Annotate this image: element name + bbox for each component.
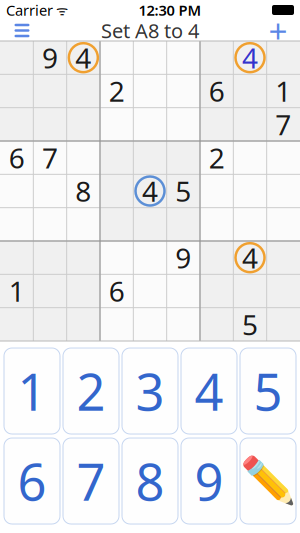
staticText: 6: [209, 72, 225, 110]
staticText: 5: [242, 306, 258, 343]
staticText: 1: [17, 357, 46, 425]
staticText: 4: [242, 239, 258, 276]
staticText: 7: [76, 447, 105, 515]
staticText: 6: [109, 272, 125, 310]
staticText: 9: [42, 39, 58, 76]
staticText: 4: [75, 39, 91, 76]
staticText: Set A8 to 4: [101, 17, 199, 44]
staticText: 9: [175, 239, 191, 276]
staticText: 6: [9, 139, 25, 176]
staticText: 9: [194, 447, 223, 515]
staticText: 7: [42, 139, 58, 176]
staticText: ✏️: [240, 455, 296, 507]
staticText: 2: [109, 72, 125, 110]
staticText: 1: [275, 72, 291, 110]
staticText: Carrier: [6, 0, 53, 20]
staticText: 8: [135, 447, 164, 515]
staticText: 3: [135, 357, 164, 425]
staticText: 4: [242, 39, 258, 76]
button[interactable]: 3: [122, 348, 178, 434]
staticText: 5: [175, 172, 191, 210]
staticText: 5: [253, 357, 282, 425]
button[interactable]: Add: [256, 20, 300, 41]
button[interactable]: 1: [4, 348, 60, 434]
button[interactable]: 4: [181, 348, 237, 434]
button[interactable]: 5: [240, 348, 296, 434]
staticText: ᯤ: [53, 1, 68, 19]
staticText: 4: [194, 357, 223, 425]
staticText: 6: [17, 447, 46, 515]
staticText: 2: [76, 357, 105, 425]
button[interactable]: Menu: [0, 20, 44, 41]
staticText: 8: [75, 172, 91, 210]
button[interactable]: 8: [122, 438, 178, 524]
staticText: 2: [209, 139, 225, 176]
button[interactable]: 9: [181, 438, 237, 524]
button[interactable]: 6: [4, 438, 60, 524]
staticText: +: [268, 8, 287, 53]
staticText: 12:30 PM: [138, 0, 201, 20]
staticText: 1: [9, 272, 25, 310]
button[interactable]: 2: [63, 348, 119, 434]
button[interactable]: 7: [63, 438, 119, 524]
staticText: 4: [142, 172, 158, 210]
button[interactable]: ✏️: [240, 438, 296, 524]
staticText: 7: [275, 106, 291, 143]
